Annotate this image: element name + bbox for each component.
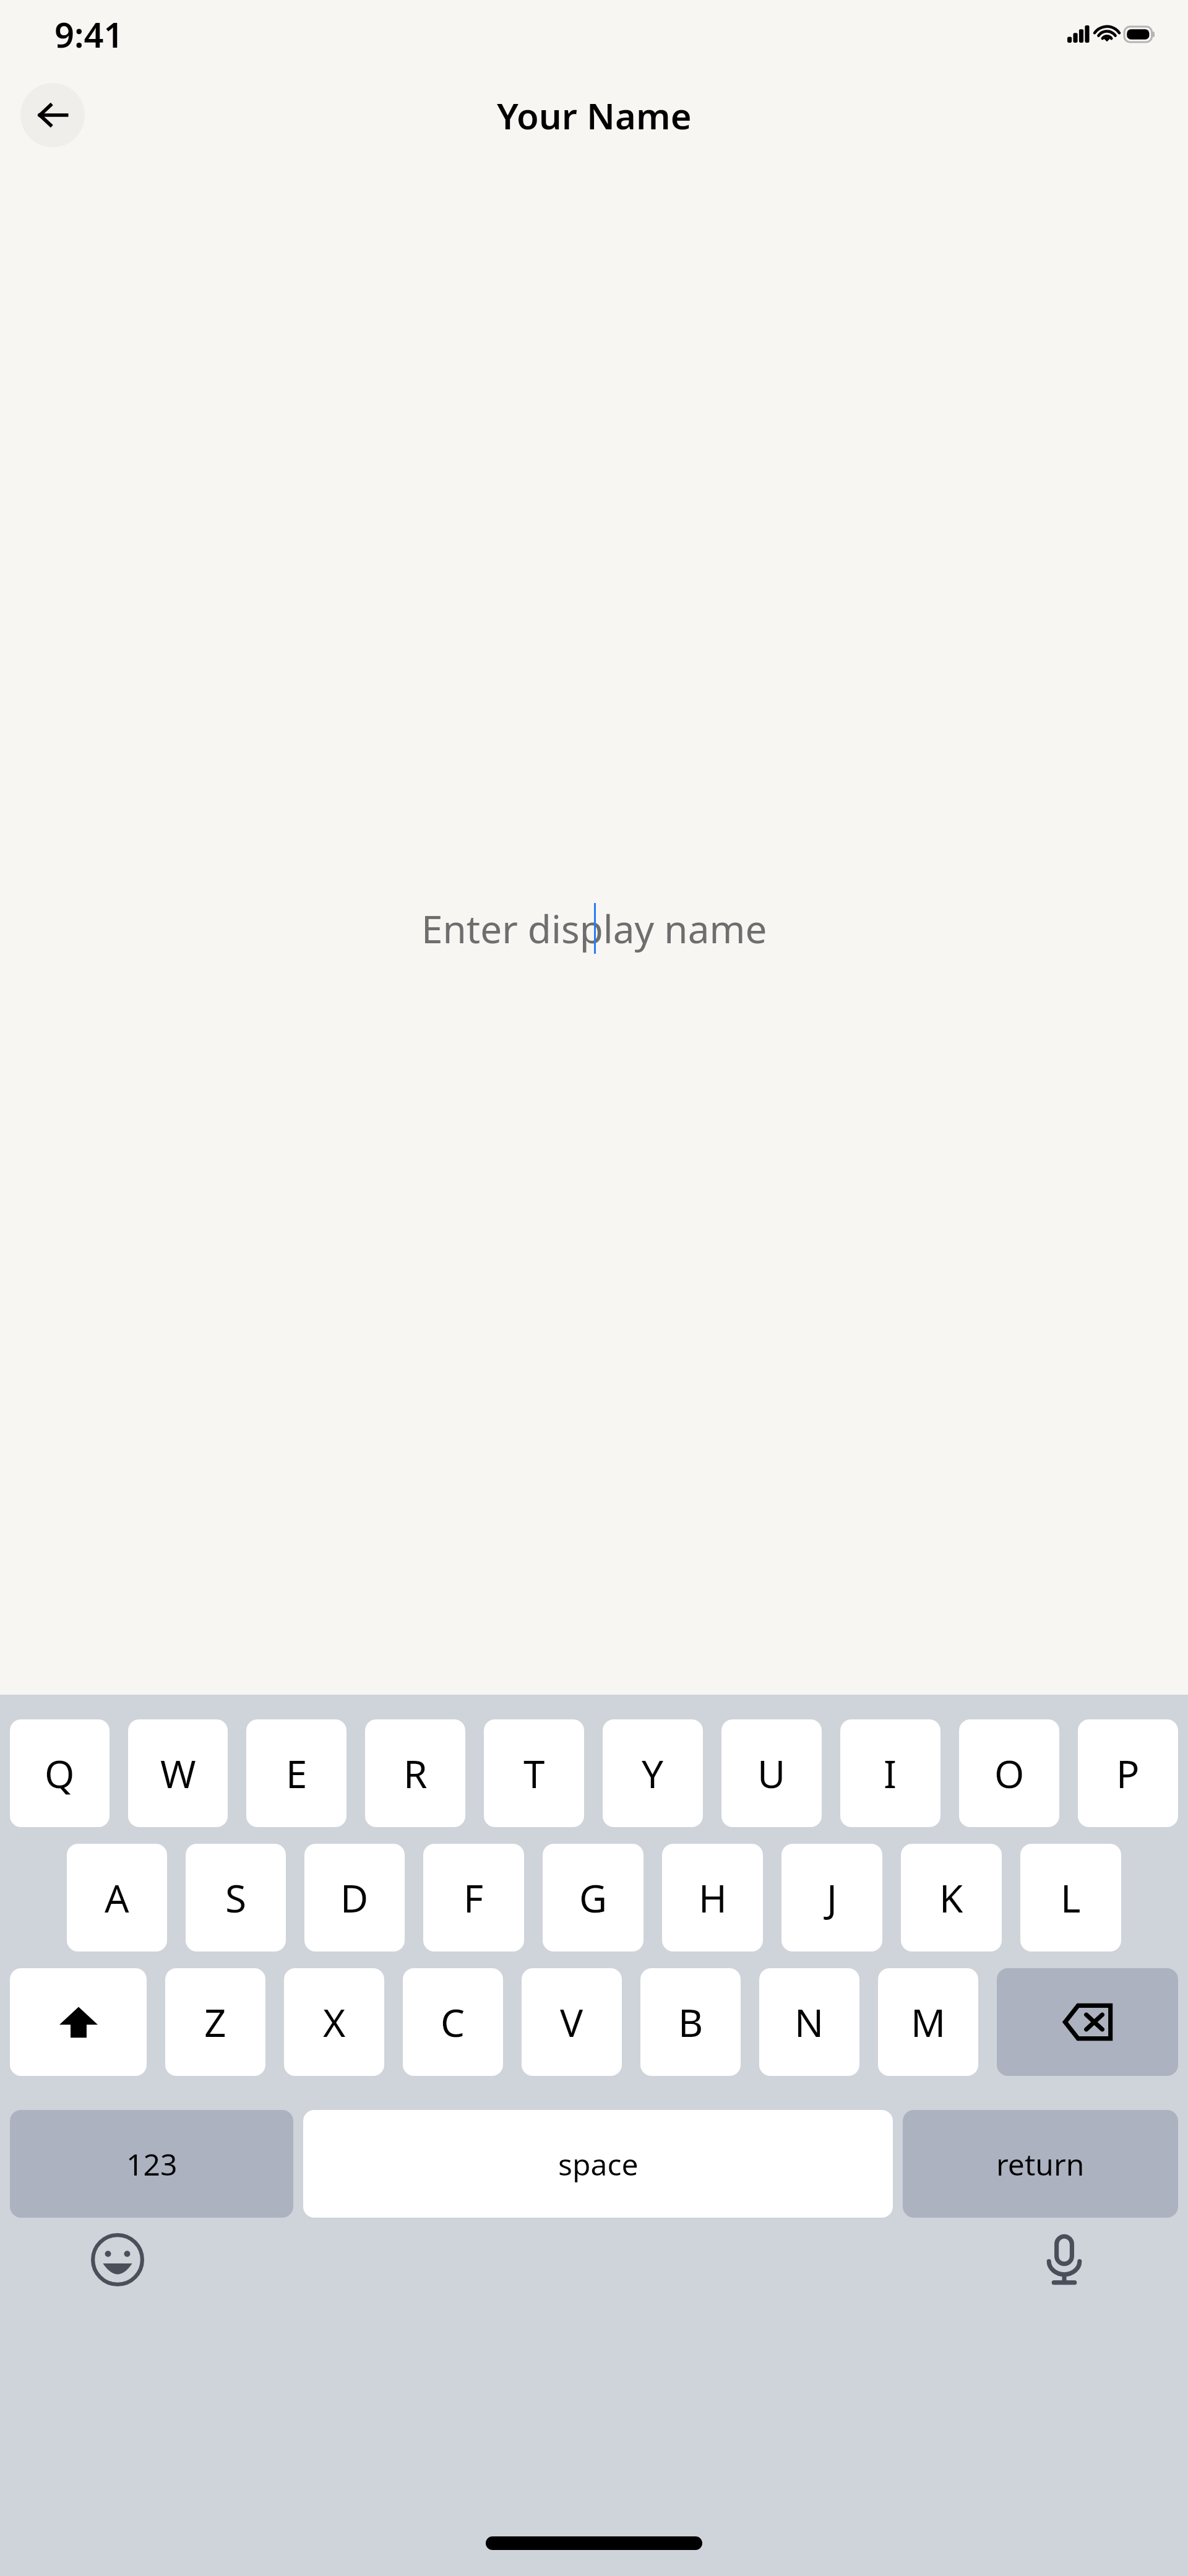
button[interactable]: Q (10, 1719, 110, 1827)
staticText: 123 (126, 2144, 178, 2184)
staticText: G (579, 1872, 608, 1924)
staticText: Z (204, 1996, 226, 2048)
staticText: A (105, 1872, 129, 1924)
staticText: P (1116, 1747, 1140, 1799)
button[interactable]: N (759, 1968, 859, 2076)
button[interactable]: B (640, 1968, 741, 2076)
staticText: Y (642, 1747, 664, 1799)
button[interactable]: P (1078, 1719, 1178, 1827)
button[interactable]: R (365, 1719, 465, 1827)
button[interactable]: E (246, 1719, 346, 1827)
button[interactable]: C (403, 1968, 503, 2076)
button[interactable]: Y (603, 1719, 703, 1827)
button[interactable]: L (1020, 1844, 1121, 1951)
button[interactable]: 123 (10, 2110, 293, 2218)
staticText: T (523, 1747, 545, 1799)
staticText: F (463, 1872, 484, 1924)
staticText: Enter display name (421, 902, 767, 954)
button[interactable]: return (903, 2110, 1178, 2218)
button[interactable]: Back (20, 83, 85, 147)
staticText: C (441, 1996, 465, 2048)
staticText: S (225, 1872, 247, 1924)
staticText: R (403, 1747, 428, 1799)
staticText: B (678, 1996, 704, 2048)
button[interactable]: G (543, 1844, 643, 1951)
button[interactable]: Backspace (997, 1968, 1178, 2076)
staticText: M (911, 1996, 946, 2048)
button[interactable]: W (128, 1719, 228, 1827)
button[interactable]: F (423, 1844, 524, 1951)
staticText: N (794, 1996, 824, 2048)
staticText: J (827, 1872, 837, 1924)
staticText: U (757, 1747, 786, 1799)
button[interactable]: A (67, 1844, 167, 1951)
staticText: return (996, 2144, 1085, 2184)
button[interactable]: I (840, 1719, 940, 1827)
button[interactable]: H (662, 1844, 763, 1951)
staticText: space (558, 2144, 639, 2184)
button[interactable]: D (304, 1844, 405, 1951)
button[interactable]: Dictation (1033, 2229, 1095, 2291)
staticText: H (699, 1872, 727, 1924)
button[interactable]: Emoji (87, 2229, 148, 2291)
staticText: X (323, 1996, 346, 2048)
staticText: K (939, 1872, 963, 1924)
button[interactable]: M (878, 1968, 978, 2076)
button[interactable]: Z (165, 1968, 265, 2076)
staticText: I (884, 1747, 897, 1799)
button[interactable]: space (303, 2110, 893, 2218)
staticText: Q (45, 1747, 75, 1799)
button[interactable]: O (959, 1719, 1059, 1827)
staticText: Your Name (497, 91, 692, 140)
button[interactable]: T (484, 1719, 584, 1827)
button[interactable]: J (781, 1844, 882, 1951)
button[interactable]: K (901, 1844, 1002, 1951)
staticText: O (994, 1747, 1025, 1799)
staticText: V (560, 1996, 583, 2048)
staticText: L (1061, 1872, 1081, 1924)
button[interactable]: S (186, 1844, 286, 1951)
button[interactable]: U (721, 1719, 822, 1827)
button[interactable]: Shift (10, 1968, 147, 2076)
button[interactable]: X (284, 1968, 384, 2076)
button[interactable]: V (522, 1968, 622, 2076)
staticText: 9:41 (54, 11, 124, 58)
staticText: W (160, 1747, 196, 1799)
staticText: E (286, 1747, 308, 1799)
staticText: D (340, 1872, 369, 1924)
